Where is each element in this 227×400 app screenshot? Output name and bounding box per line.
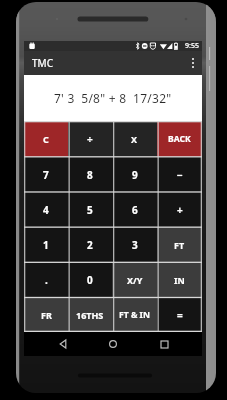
button[interactable]: Back <box>51 332 75 356</box>
staticText: C <box>43 133 49 145</box>
staticText: FT & IN <box>119 309 150 321</box>
button[interactable]: 5 <box>68 192 112 227</box>
button[interactable]: 16THS <box>68 297 112 332</box>
staticText: + <box>177 203 183 217</box>
button[interactable]: 4 <box>24 192 68 227</box>
button[interactable]: 1 <box>24 227 68 262</box>
staticText: 3 <box>132 238 138 252</box>
staticText: IN <box>174 274 185 286</box>
button[interactable]: 2 <box>68 227 112 262</box>
staticText: − <box>177 168 183 182</box>
staticText: 9:55 <box>185 41 199 51</box>
staticText: 6 <box>132 203 138 217</box>
staticText: = <box>177 308 183 322</box>
button[interactable]: IN <box>157 262 202 297</box>
staticText: 16THS <box>76 309 104 321</box>
staticText: 9 <box>132 168 138 182</box>
staticText: 5 <box>87 203 93 217</box>
button[interactable]: More options <box>184 51 202 75</box>
button[interactable]: FR <box>24 297 68 332</box>
staticText: 8 <box>87 168 93 182</box>
button[interactable]: 8 <box>68 157 112 192</box>
staticText: FR <box>41 309 52 321</box>
button[interactable]: X <box>112 121 157 157</box>
staticText: TMC <box>32 56 53 70</box>
staticText: 4 <box>43 203 49 217</box>
staticText: 7 <box>43 168 49 182</box>
button[interactable]: + <box>157 192 202 227</box>
staticText: . <box>45 273 48 287</box>
button[interactable]: 0 <box>68 262 112 297</box>
staticText: 2 <box>87 238 93 252</box>
button[interactable]: FT <box>157 227 202 262</box>
button[interactable]: FT & IN <box>112 297 157 332</box>
button[interactable]: 3 <box>112 227 157 262</box>
button[interactable]: 9 <box>112 157 157 192</box>
button[interactable]: − <box>157 157 202 192</box>
staticText: X <box>131 133 138 145</box>
button[interactable]: Recents <box>152 332 176 356</box>
button[interactable]: BACK <box>157 121 202 157</box>
staticText: ÷ <box>87 132 93 146</box>
button[interactable]: 6 <box>112 192 157 227</box>
staticText: 0 <box>87 273 93 287</box>
staticText: BACK <box>168 133 191 145</box>
button[interactable]: X/Y <box>112 262 157 297</box>
button[interactable]: C <box>24 121 68 157</box>
button[interactable]: ÷ <box>68 121 112 157</box>
button[interactable]: 7 <box>24 157 68 192</box>
staticText: 7' 3 5/8" + 8 17/32" <box>54 90 172 106</box>
staticText: X/Y <box>127 274 143 286</box>
button[interactable]: = <box>157 297 202 332</box>
staticText: 1 <box>43 238 49 252</box>
staticText: FT <box>174 239 185 251</box>
button[interactable]: Home <box>101 332 125 356</box>
button[interactable]: . <box>24 262 68 297</box>
